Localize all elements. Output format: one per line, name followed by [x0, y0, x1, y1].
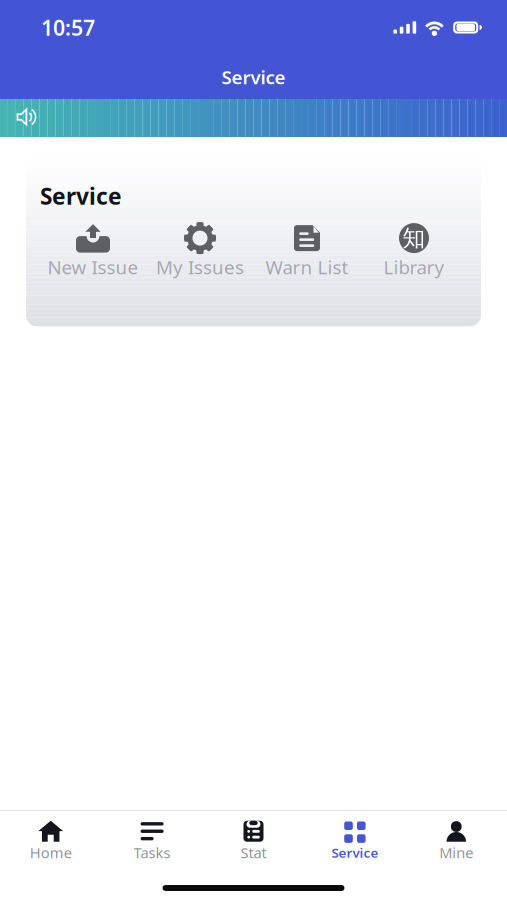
button[interactable]: Home [0, 812, 101, 867]
button[interactable]: My Issues [146, 222, 253, 279]
button[interactable]: 知 [360, 222, 467, 279]
staticText: 10:57 [41, 13, 95, 42]
button[interactable]: New Issue [39, 222, 146, 279]
staticText: Mine [439, 843, 473, 862]
staticText: Service [40, 181, 122, 211]
button[interactable]: Service [304, 813, 406, 866]
button[interactable]: Warn List [253, 222, 360, 279]
staticText: Service [221, 65, 285, 89]
staticText: Library [383, 255, 444, 279]
button[interactable]: Announcements [16, 107, 40, 129]
staticText: 知 [402, 224, 425, 252]
button[interactable]: Mine [406, 812, 507, 867]
staticText: New Issue [47, 255, 138, 279]
staticText: Stat [240, 843, 266, 862]
button[interactable]: Stat [203, 812, 304, 867]
staticText: Tasks [134, 843, 171, 862]
staticText: Home [30, 843, 72, 862]
staticText: Warn List [265, 255, 348, 279]
button[interactable]: Tasks [101, 812, 203, 867]
staticText: Service [331, 844, 378, 861]
staticText: My Issues [156, 255, 244, 279]
